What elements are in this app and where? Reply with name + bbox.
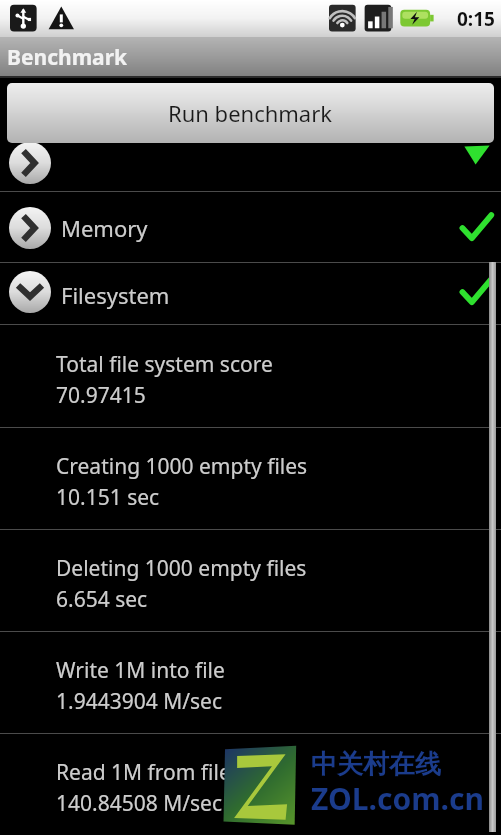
staticText: Benchmark xyxy=(7,43,128,72)
button[interactable]: Expand xyxy=(0,193,501,263)
staticText: Write 1M into file xyxy=(56,656,225,685)
other: Expand xyxy=(9,207,51,249)
staticText: Creating 1000 empty files xyxy=(56,452,308,481)
other: Expand xyxy=(9,142,51,184)
button[interactable]: Creating 1000 empty files xyxy=(0,428,501,530)
staticText: 70.97415 xyxy=(56,381,146,410)
staticText: 0:15 xyxy=(457,6,495,32)
staticText: Read 1M from file xyxy=(56,758,231,787)
button[interactable]: Collapse xyxy=(0,264,501,325)
button[interactable]: Write 1M into file xyxy=(0,632,501,734)
button[interactable]: Deleting 1000 empty files xyxy=(0,530,501,632)
staticText: 10.151 sec xyxy=(56,483,160,512)
other: Collapse xyxy=(9,271,51,313)
button[interactable]: Expand xyxy=(0,145,501,192)
staticText: 6.654 sec xyxy=(56,585,148,614)
staticText: ZOL.com.cn xyxy=(311,778,484,819)
button[interactable]: Run benchmark xyxy=(7,83,494,143)
staticText: 140.84508 M/sec xyxy=(56,789,223,818)
staticText: 1.9443904 M/sec xyxy=(56,687,223,716)
staticText: Total file system score xyxy=(56,350,273,379)
staticText: Run benchmark xyxy=(168,98,333,128)
staticText: Memory xyxy=(61,213,148,243)
staticText: Filesystem xyxy=(61,280,170,310)
button[interactable]: Read 1M from file xyxy=(0,734,501,835)
staticText: Deleting 1000 empty files xyxy=(56,554,307,583)
button[interactable]: Total file system score xyxy=(0,326,501,428)
staticText: 中关村在线 xyxy=(311,748,441,781)
